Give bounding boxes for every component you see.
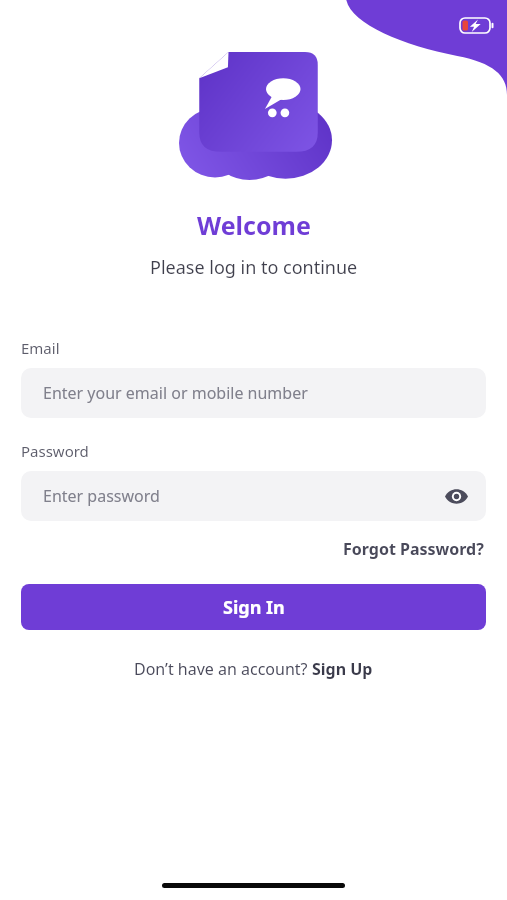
staticText: Sign Up bbox=[312, 658, 373, 680]
button[interactable]: Enter password bbox=[21, 471, 486, 521]
staticText: Don’t have an account? bbox=[134, 658, 312, 680]
staticText: Sign In bbox=[223, 595, 285, 620]
staticText: Please log in to continue bbox=[150, 255, 358, 280]
button[interactable]: Forgot Password? bbox=[341, 535, 486, 563]
staticText: Enter password bbox=[43, 485, 160, 507]
button[interactable]: Enter your email or mobile number bbox=[21, 368, 486, 418]
staticText: Enter your email or mobile number bbox=[43, 382, 308, 404]
staticText: Password bbox=[21, 441, 89, 461]
button[interactable]: Show password bbox=[440, 480, 472, 512]
button[interactable]: Sign Up bbox=[312, 658, 373, 680]
staticText: Forgot Password? bbox=[343, 538, 484, 560]
staticText: Welcome bbox=[197, 208, 311, 242]
button[interactable]: Sign In bbox=[21, 584, 486, 630]
staticText: Email bbox=[21, 338, 60, 358]
